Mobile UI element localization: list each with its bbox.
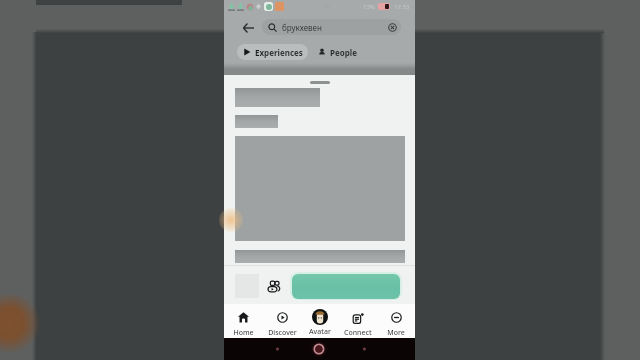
button[interactable]: More <box>377 304 415 338</box>
staticText: People <box>330 47 357 58</box>
button[interactable]: Connect <box>339 304 377 338</box>
staticText: Discover <box>268 328 297 338</box>
button[interactable] <box>292 274 400 299</box>
button[interactable]: брукхевен <box>262 19 401 35</box>
staticText: 17:53 <box>394 3 410 11</box>
staticText: Experiences <box>255 47 303 58</box>
button[interactable]: Friends <box>265 278 281 294</box>
staticText: Avatar <box>309 327 331 337</box>
button[interactable]: Back <box>238 18 258 38</box>
staticText: брукхевен <box>282 22 322 33</box>
staticText: 13% <box>363 3 375 11</box>
button[interactable]: Home <box>224 304 263 338</box>
staticText: Home <box>233 328 254 338</box>
button[interactable]: Experiences <box>237 44 308 60</box>
button[interactable]: Clear search <box>388 23 397 32</box>
button[interactable]: People <box>314 44 361 60</box>
button[interactable]: Discover <box>263 304 301 338</box>
staticText: Connect <box>344 328 372 338</box>
button[interactable]: Avatar <box>301 304 339 338</box>
staticText: More <box>387 328 405 338</box>
